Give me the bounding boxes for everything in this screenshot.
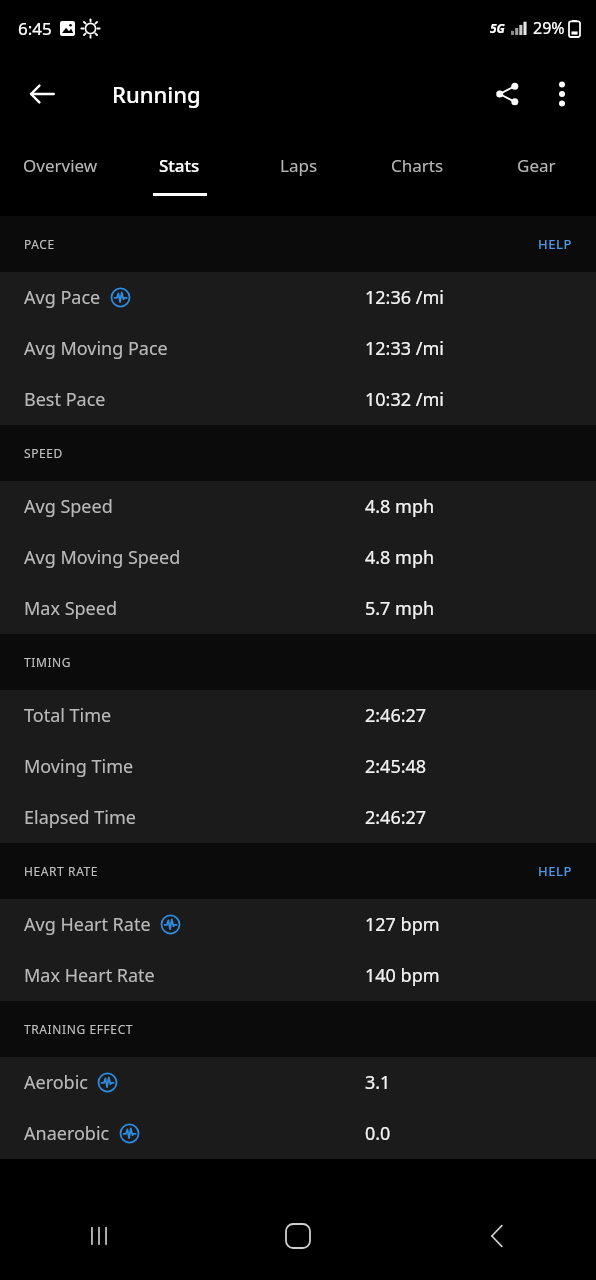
staticText: Max Heart Rate [24,963,155,988]
staticText: 3.1 [365,1070,391,1095]
staticText: TRAINING EFFECT [24,1021,134,1037]
staticText: HELP [538,235,572,253]
staticText: 4.8 mph [365,545,435,570]
button[interactable]: Max Heart Rate [0,950,596,1001]
staticText: Laps [280,154,318,177]
staticText: 6:45 [18,17,52,40]
staticText: Avg Moving Speed [24,545,181,570]
button[interactable]: Avg Heart Rate [0,899,596,950]
staticText: PACE [24,236,55,252]
button[interactable]: Back [10,62,74,126]
button[interactable]: Recent apps [63,1200,135,1272]
button[interactable]: HELP [514,223,596,265]
staticText: SPEED [24,445,63,461]
button[interactable]: Gear [477,132,596,208]
staticText: Avg Pace [24,285,101,310]
button[interactable]: Moving Time [0,741,596,792]
staticText: Gear [517,154,556,177]
staticText: 2:45:48 [365,754,427,779]
button[interactable]: HELP [514,850,596,892]
staticText: Best Pace [24,387,106,412]
staticText: Moving Time [24,754,134,779]
button[interactable]: Avg Speed [0,481,596,532]
staticText: Stats [159,154,200,177]
staticText: 2:46:27 [365,805,427,830]
staticText: HEART RATE [24,863,99,879]
button[interactable]: Home [262,1200,334,1272]
staticText: 4.8 mph [365,494,435,519]
staticText: 29% [533,17,565,39]
button[interactable]: Stats [120,132,239,208]
button[interactable]: Overview [0,132,120,208]
staticText: Avg Heart Rate [24,912,151,937]
button[interactable]: Charts [358,132,477,208]
button[interactable]: More options [536,68,588,120]
button[interactable]: Avg Moving Speed [0,532,596,583]
staticText: 5.7 mph [365,596,435,621]
button[interactable]: Total Time [0,690,596,741]
staticText: Avg Speed [24,494,113,519]
staticText: 2:46:27 [365,703,427,728]
button[interactable]: Avg Pace [0,272,596,323]
staticText: Charts [391,154,444,177]
button[interactable]: Anaerobic [0,1108,596,1159]
staticText: Running [112,79,201,109]
staticText: Avg Moving Pace [24,336,168,361]
button[interactable]: Elapsed Time [0,792,596,843]
staticText: 127 bpm [365,912,440,937]
button[interactable]: Share [478,65,536,123]
staticText: TIMING [24,654,72,670]
staticText: 10:32 /mi [365,387,444,412]
button[interactable]: Laps [239,132,358,208]
button[interactable]: Max Speed [0,583,596,634]
button[interactable]: Aerobic [0,1057,596,1108]
staticText: 12:33 /mi [365,336,444,361]
staticText: Elapsed Time [24,805,136,830]
button[interactable]: Avg Moving Pace [0,323,596,374]
staticText: Max Speed [24,596,117,621]
staticText: HELP [538,862,572,880]
staticText: Overview [23,154,98,177]
staticText: Aerobic [24,1070,88,1095]
button[interactable]: Back [461,1200,533,1272]
staticText: 0.0 [365,1121,391,1146]
staticText: 140 bpm [365,963,440,988]
staticText: 12:36 /mi [365,285,444,310]
staticText: Anaerobic [24,1121,110,1146]
staticText: Total Time [24,703,112,728]
button[interactable]: Best Pace [0,374,596,425]
staticText: 5G [490,20,505,36]
